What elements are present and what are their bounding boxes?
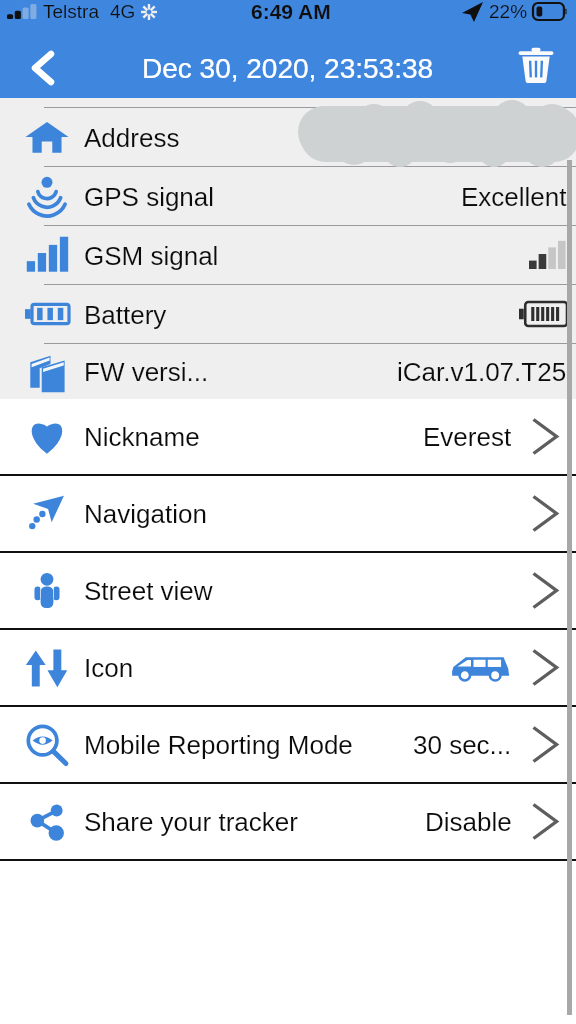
- button[interactable]: Battery: [0, 285, 576, 343]
- staticText: Nickname: [84, 422, 200, 451]
- button[interactable]: GSM signal: [0, 226, 576, 284]
- staticText: Icon: [84, 653, 134, 682]
- button[interactable]: Address: [0, 108, 576, 166]
- staticText: 4G: [110, 1, 136, 22]
- staticText: Mobile Reporting Mode: [84, 730, 353, 759]
- staticText: GSM signal: [84, 241, 219, 270]
- staticText: 30 sec...: [413, 730, 512, 759]
- button[interactable]: Share your tracker: [0, 784, 576, 859]
- staticText: Telstra: [43, 1, 99, 22]
- staticText: Dec 30, 2020, 23:53:38: [142, 53, 434, 84]
- staticText: 6:49 AM: [251, 0, 331, 23]
- button[interactable]: GPS signal: [0, 167, 576, 225]
- staticText: Everest: [423, 422, 512, 451]
- staticText: Share your tracker: [84, 807, 298, 836]
- button[interactable]: Nickname: [0, 399, 576, 474]
- staticText: Navigation: [84, 499, 207, 528]
- staticText: Battery: [84, 300, 167, 329]
- button[interactable]: Navigation: [0, 476, 576, 551]
- staticText: Address: [84, 123, 180, 152]
- staticText: FW versi...: [84, 357, 209, 386]
- button[interactable]: Street view: [0, 553, 576, 628]
- staticText: GPS signal: [84, 182, 215, 211]
- staticText: Disable: [425, 807, 512, 836]
- staticText: 22%: [489, 1, 528, 22]
- button[interactable]: Back: [0, 38, 86, 98]
- button[interactable]: Mobile Reporting Mode: [0, 707, 576, 782]
- button[interactable]: FW versi...: [0, 344, 576, 399]
- button[interactable]: Icon: [0, 630, 576, 705]
- staticText: iCar.v1.07.T25: [397, 357, 567, 386]
- button[interactable]: Delete: [496, 38, 576, 98]
- staticText: Street view: [84, 576, 213, 605]
- staticText: Excellent: [461, 182, 567, 211]
